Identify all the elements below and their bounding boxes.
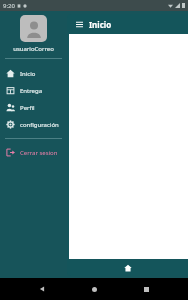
staticText: Inicio <box>20 70 36 78</box>
button[interactable]: Perfil <box>0 99 67 116</box>
staticText: Inicio <box>89 19 112 30</box>
button[interactable]: configuración <box>0 116 67 133</box>
button[interactable]: Cerrar sesion <box>0 144 67 161</box>
staticText: Cerrar sesion <box>20 149 58 157</box>
button[interactable]: Recientes <box>136 279 156 299</box>
button[interactable]: Inicio <box>0 65 67 82</box>
button[interactable]: Abrir menú <box>73 18 85 30</box>
button[interactable]: Inicio <box>84 279 104 299</box>
button[interactable]: Inicio <box>117 260 139 275</box>
button[interactable]: Atrás <box>32 279 52 299</box>
staticText: Perfil <box>20 104 35 112</box>
button[interactable]: Entrega <box>0 82 67 99</box>
staticText: configuración <box>20 121 59 129</box>
staticText: usuarioCorreo <box>2 45 65 53</box>
staticText: 9:20 <box>3 2 15 10</box>
staticText: Entrega <box>20 87 43 95</box>
